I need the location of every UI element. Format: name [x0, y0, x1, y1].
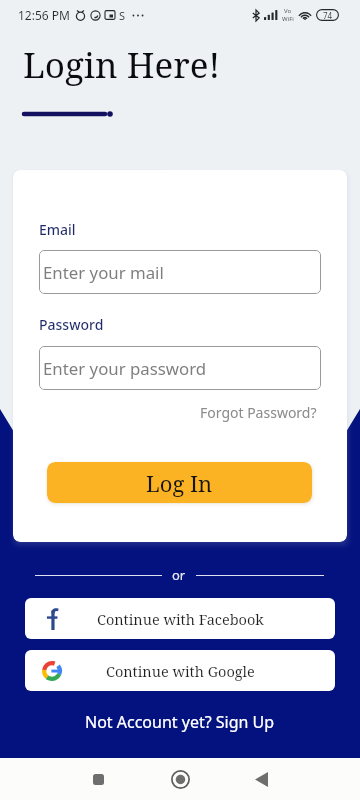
staticText: WiFi [282, 15, 294, 23]
button[interactable]: Continue with Google [25, 650, 335, 691]
staticText: Not Account yet? Sign Up [85, 711, 275, 733]
staticText: Enter your mail [43, 261, 164, 284]
button[interactable]: Enter your mail [39, 250, 321, 294]
staticText: Password [39, 315, 104, 334]
button[interactable]: Recents [70, 758, 126, 800]
button[interactable]: Back [233, 758, 289, 800]
button[interactable]: Home [152, 758, 208, 800]
button[interactable]: Enter your password [39, 346, 321, 390]
staticText: S [119, 8, 126, 23]
staticText: Email [39, 220, 76, 239]
staticText: Log In [146, 468, 213, 498]
button[interactable]: Continue with Facebook [25, 598, 335, 639]
button[interactable]: Not Account yet? Sign Up [79, 707, 281, 737]
staticText: 12:56 PM [18, 7, 70, 23]
staticText: Vo [284, 7, 292, 15]
staticText: Forgot Password? [200, 403, 317, 422]
staticText: Continue with Facebook [97, 609, 264, 629]
staticText: Login Here! [23, 41, 221, 89]
button[interactable]: Log In [47, 462, 312, 503]
staticText: Enter your password [43, 357, 207, 380]
staticText: 74 [323, 10, 333, 21]
staticText: or [172, 566, 186, 584]
button[interactable]: Forgot Password? [196, 400, 321, 425]
staticText: Continue with Google [106, 661, 255, 681]
